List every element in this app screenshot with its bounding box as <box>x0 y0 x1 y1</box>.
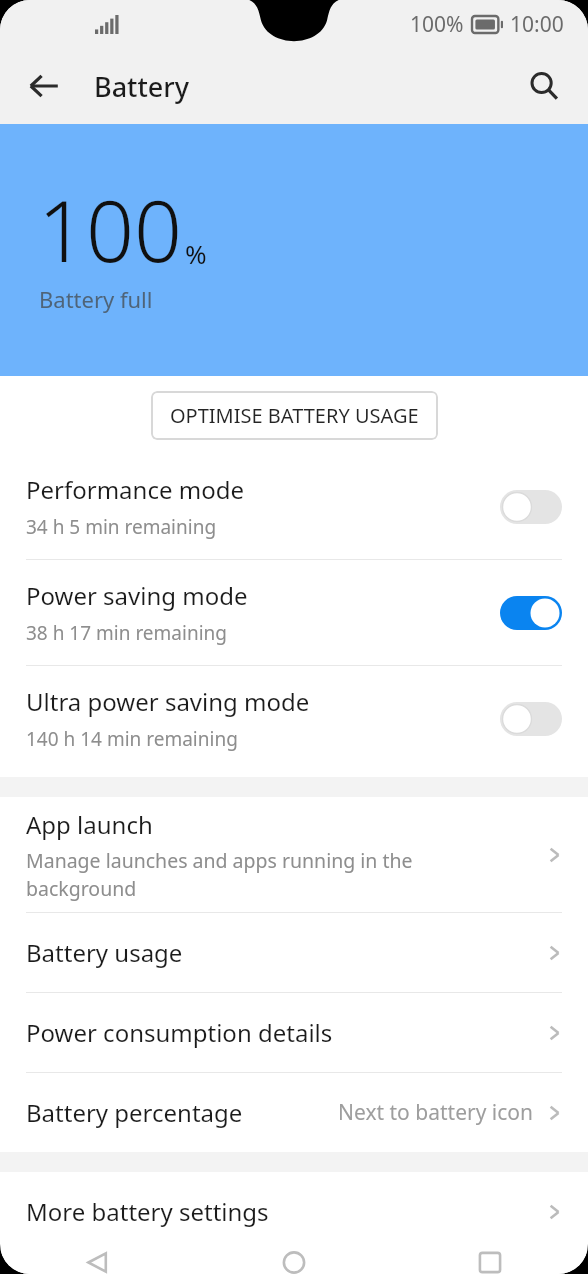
button[interactable]: Back <box>0 1251 196 1274</box>
staticText: More battery settings <box>26 1195 269 1228</box>
staticText: 100 <box>38 172 182 286</box>
button[interactable]: Power saving mode <box>0 560 588 665</box>
staticText: Performance mode <box>26 473 244 506</box>
button[interactable]: OPTIMISE BATTERY USAGE <box>151 391 438 440</box>
staticText: 140 h 14 min remaining <box>26 726 238 752</box>
staticText: Manage launches and apps running in the … <box>26 847 413 902</box>
staticText: 34 h 5 min remaining <box>26 514 217 540</box>
button[interactable]: Home <box>196 1251 392 1274</box>
staticText: Battery <box>94 68 189 105</box>
staticText: OPTIMISE BATTERY USAGE <box>170 402 419 429</box>
staticText: App launch <box>26 808 153 841</box>
button[interactable]: Power consumption details <box>0 993 588 1072</box>
button[interactable]: App launch <box>0 797 588 912</box>
staticText: Ultra power saving mode <box>26 685 310 718</box>
button[interactable]: Recents <box>392 1251 588 1274</box>
button[interactable]: Battery percentage <box>0 1073 588 1152</box>
button[interactable]: Ultra power saving mode <box>0 666 588 771</box>
button[interactable]: Off <box>500 490 562 524</box>
button[interactable]: Performance mode <box>0 454 588 559</box>
staticText: Battery usage <box>26 936 183 969</box>
button[interactable]: On <box>500 596 562 630</box>
staticText: Power consumption details <box>26 1016 333 1049</box>
staticText: Battery percentage <box>26 1096 243 1129</box>
staticText: Power saving mode <box>26 579 248 612</box>
staticText: Next to battery icon <box>338 1098 534 1127</box>
staticText: 38 h 17 min remaining <box>26 620 227 646</box>
staticText: Battery full <box>39 284 153 314</box>
button[interactable]: Back <box>16 58 72 114</box>
staticText: % <box>185 236 207 271</box>
button[interactable]: Off <box>500 702 562 736</box>
button[interactable]: Search <box>516 58 572 114</box>
button[interactable]: Battery usage <box>0 913 588 992</box>
staticText: 10:00 <box>510 10 564 39</box>
staticText: 100% <box>410 10 464 39</box>
button[interactable]: More battery settings <box>0 1172 588 1251</box>
